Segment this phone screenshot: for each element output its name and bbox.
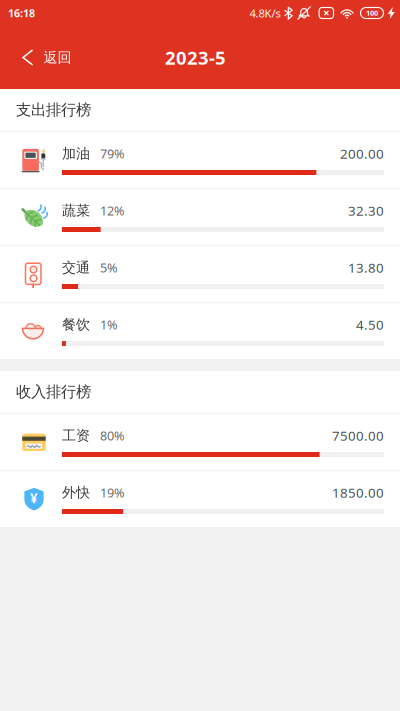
button[interactable]: 餐饮 <box>0 303 400 360</box>
staticText: 收入排行榜 <box>16 382 91 402</box>
staticText: 200.00 <box>340 144 384 163</box>
staticText: 12% <box>100 202 125 219</box>
staticText: ¥ <box>30 489 38 507</box>
staticText: 19% <box>100 484 125 501</box>
staticText: 4.8K/s <box>250 5 281 21</box>
staticText: 交通 <box>62 259 90 276</box>
staticText: 工资 <box>62 427 90 444</box>
staticText: 100 <box>366 8 378 18</box>
staticText: 1850.00 <box>332 483 384 502</box>
staticText: 32.30 <box>348 201 384 220</box>
staticText: 16:18 <box>8 6 35 20</box>
button[interactable]: 交通 <box>0 246 400 303</box>
staticText: 外快 <box>62 484 90 501</box>
staticText: 返回 <box>43 49 71 66</box>
button[interactable]: ¥ <box>0 471 400 528</box>
button[interactable]: 返回 <box>0 26 85 89</box>
button[interactable]: 蔬菜 <box>0 189 400 246</box>
button[interactable]: 加油 <box>0 132 400 189</box>
staticText: 7500.00 <box>332 426 384 445</box>
staticText: 蔬菜 <box>62 202 90 219</box>
staticText: 79% <box>100 145 125 162</box>
staticText: 13.80 <box>348 258 384 277</box>
button[interactable]: 工资 <box>0 414 400 471</box>
staticText: 1% <box>100 316 118 333</box>
staticText: 80% <box>100 427 125 444</box>
staticText: 餐饮 <box>62 316 90 333</box>
staticText: 4.50 <box>356 315 384 334</box>
staticText: 加油 <box>62 145 90 162</box>
staticText: 支出排行榜 <box>16 100 91 120</box>
staticText: 2023-5 <box>165 45 226 70</box>
staticText: 5% <box>100 259 118 276</box>
